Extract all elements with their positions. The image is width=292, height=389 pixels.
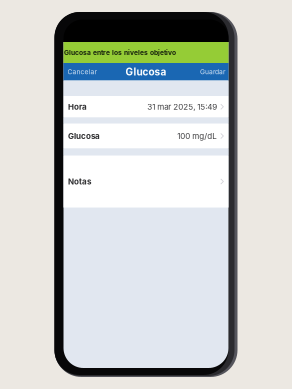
button[interactable]: Glucosa — [63, 123, 228, 148]
staticText: Hora — [68, 102, 87, 112]
staticText: Notas — [68, 177, 91, 186]
staticText: Guardar — [200, 68, 226, 76]
button[interactable]: Notas — [63, 155, 228, 207]
staticText: Glucosa — [125, 66, 166, 78]
button[interactable]: Cancelar — [63, 63, 100, 80]
staticText: Glucosa — [68, 131, 100, 141]
staticText: 100 mg/dL — [177, 131, 217, 141]
button[interactable]: Hora — [63, 96, 228, 117]
staticText: Cancelar — [67, 68, 97, 76]
staticText: Glucosa entre los niveles objetivo — [64, 48, 176, 57]
button[interactable]: Guardar — [197, 63, 228, 80]
staticText: 31 mar 2025, 15:49 — [147, 102, 217, 112]
